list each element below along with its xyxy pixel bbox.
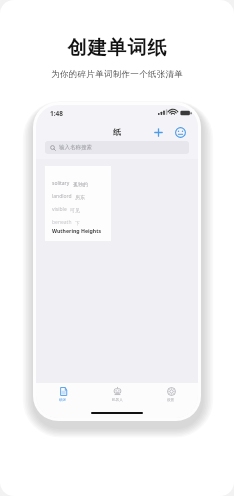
button[interactable]: Account [172,124,188,140]
staticText: solitary [52,180,70,187]
staticText: 1:48 [50,109,63,118]
button[interactable]: solitary [45,166,111,241]
staticText: 孤独的 [73,181,88,187]
staticText: 纸 [113,127,121,137]
staticText: 下 [75,220,80,226]
staticText: visible [52,206,67,213]
staticText: 可见 [70,207,80,213]
staticText: beneath [52,219,72,226]
staticText: 纸张 [59,398,67,403]
staticText: Wuthering Heights [52,227,102,234]
staticText: 为你的碎片单词制作一个纸张清单 [51,69,183,80]
staticText: landlord [52,193,72,200]
staticText: 设置 [167,398,175,403]
button[interactable]: 输入名称搜索 [45,141,189,154]
button[interactable]: Settings [144,383,198,407]
staticText: 机器人 [112,398,123,403]
staticText: 房东 [75,194,85,200]
staticText: 创建单词纸 [67,36,167,60]
button[interactable]: Papers [36,383,90,407]
button[interactable]: Add [150,124,166,140]
staticText: 输入名称搜索 [59,144,92,151]
button[interactable]: Robot [90,383,144,407]
